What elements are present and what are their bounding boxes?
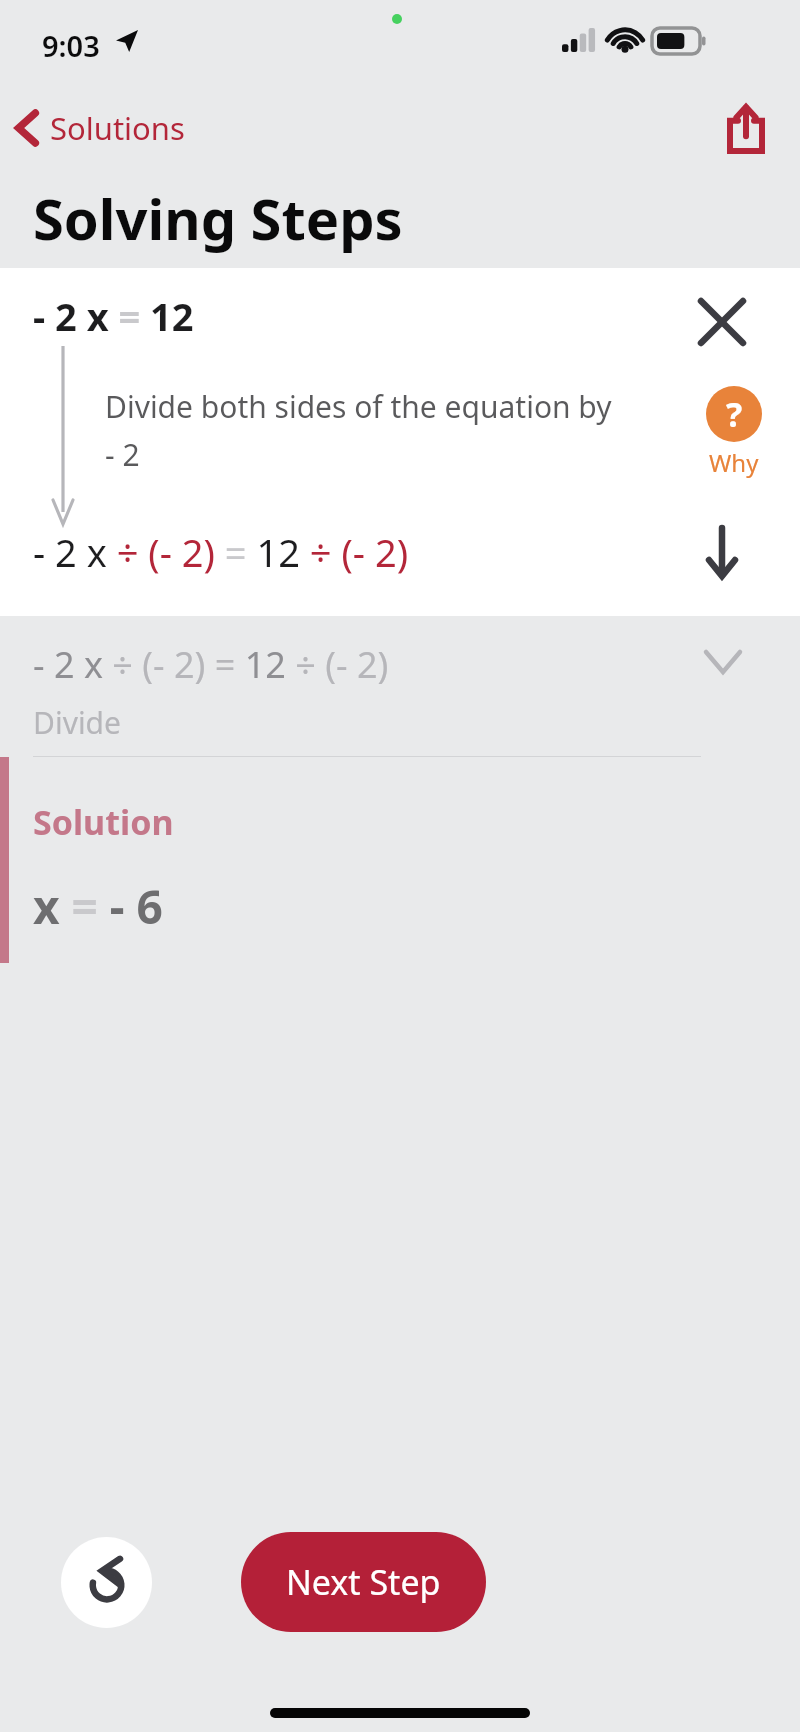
button[interactable]: ?	[700, 386, 768, 479]
staticText: Divide both sides of the equation by - 2	[105, 386, 625, 474]
button[interactable]: Solutions	[0, 99, 199, 157]
button[interactable]: Share	[718, 100, 774, 156]
button[interactable]: - 2 x ÷ (- 2) = 12 ÷ (- 2)	[0, 616, 800, 756]
button[interactable]: Apply step	[690, 520, 754, 584]
button[interactable]: Next Step	[241, 1532, 486, 1632]
staticText: - 2 x ÷ (- 2) = 12 ÷ (- 2)	[33, 640, 389, 689]
staticText: Solutions	[50, 107, 185, 149]
staticText: - 2 x = 12	[33, 290, 194, 342]
staticText: Solving Steps	[33, 180, 403, 256]
staticText: Why	[709, 446, 759, 479]
staticText: Divide	[33, 702, 121, 743]
staticText: Solution	[33, 799, 174, 845]
staticText: 9:03	[42, 26, 100, 65]
button[interactable]: Close	[690, 290, 754, 354]
staticText: x = - 6	[33, 875, 163, 938]
staticText: ?	[726, 391, 743, 437]
staticText: - 2 x ÷ (- 2) = 12 ÷ (- 2)	[33, 526, 409, 578]
staticText: Next Step	[286, 1559, 441, 1605]
button[interactable]: Undo	[61, 1537, 152, 1628]
